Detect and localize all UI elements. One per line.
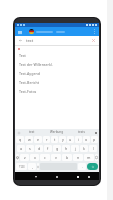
staticText: s (29, 146, 31, 151)
staticText: j (75, 146, 76, 151)
staticText: Text-Fotos (19, 89, 37, 94)
staticText: Text (19, 53, 26, 58)
button[interactable]: x (30, 154, 39, 161)
button[interactable]: k (80, 145, 88, 152)
button[interactable]: Search (87, 163, 98, 170)
other: Back (18, 38, 23, 43)
button[interactable]: v (51, 154, 61, 161)
button[interactable]: r (43, 136, 50, 143)
staticText: t (54, 137, 56, 142)
staticText: q (19, 137, 22, 142)
staticText: p (93, 137, 96, 142)
button[interactable]: c (40, 154, 50, 161)
staticText: u (69, 137, 72, 142)
button[interactable]: n (73, 154, 83, 161)
button[interactable]: More suggestions (94, 131, 97, 134)
staticText: Text-Aygend (19, 71, 40, 76)
button[interactable]: z (20, 154, 29, 161)
staticText: . (82, 164, 83, 169)
button[interactable]: e (34, 136, 42, 143)
button[interactable]: Text der Willenserkl. (15, 60, 99, 69)
button[interactable]: Text-Bericht (15, 78, 99, 87)
staticText: o (85, 137, 88, 142)
button[interactable]: s (26, 145, 34, 152)
staticText: y (62, 137, 64, 142)
staticText: , (32, 164, 33, 169)
button[interactable]: Text (15, 51, 99, 60)
staticText: x (34, 155, 36, 160)
staticText: text (26, 38, 34, 43)
button[interactable]: Clear (91, 38, 96, 43)
button[interactable]: d (35, 145, 43, 152)
staticText: l (93, 146, 94, 151)
staticText: g (56, 146, 59, 151)
button[interactable]: Keyboard (86, 174, 91, 179)
button[interactable]: Back (33, 174, 38, 179)
button[interactable]: Recents (75, 174, 80, 179)
button[interactable]: j (71, 145, 79, 152)
button[interactable]: f (44, 145, 52, 152)
staticText: e (37, 137, 40, 142)
button[interactable]: More options (92, 29, 97, 34)
button[interactable]: Backspace (95, 154, 98, 161)
staticText: d (38, 146, 41, 151)
staticText: a (20, 146, 23, 151)
button[interactable]: a (17, 145, 25, 152)
button[interactable]: Menu (17, 29, 23, 35)
staticText: n (77, 155, 80, 160)
button[interactable]: Text-Aygend (15, 69, 99, 78)
button[interactable]: g (53, 145, 61, 152)
button[interactable]: text (20, 129, 44, 135)
staticText: ?123 (19, 165, 25, 169)
staticText: texts (78, 130, 85, 134)
staticText: h (65, 146, 68, 151)
button[interactable]: Text-Fotos (15, 87, 99, 96)
staticText: v (55, 155, 57, 160)
button[interactable]: Shift (16, 154, 19, 161)
button[interactable]: , (28, 163, 36, 170)
button[interactable]: w (25, 136, 33, 143)
button[interactable]: Werbung (44, 129, 69, 135)
staticText: text (29, 130, 35, 134)
staticText: f (47, 146, 49, 151)
staticText: Werbung (50, 130, 64, 134)
staticText: c (44, 155, 46, 160)
button[interactable]: m (84, 154, 94, 161)
button[interactable]: texts (69, 129, 94, 135)
staticText: i (78, 137, 79, 142)
button[interactable]: b (62, 154, 72, 161)
button[interactable]: y (59, 136, 66, 143)
button[interactable]: German (29, 29, 34, 34)
button[interactable]: ?123 (16, 163, 27, 170)
staticText: Text der Willenserkl. (19, 62, 53, 67)
staticText: w (28, 137, 31, 142)
button[interactable]: q (16, 136, 24, 143)
button[interactable]: Emoji (37, 163, 39, 170)
staticText: k (83, 146, 85, 151)
staticText: m (87, 155, 91, 160)
button[interactable]: u (67, 136, 74, 143)
button[interactable]: h (62, 145, 70, 152)
staticText: z (24, 155, 26, 160)
staticText: Text-Bericht (19, 80, 40, 85)
button[interactable]: Voice input (17, 131, 20, 134)
button[interactable]: p (91, 136, 98, 143)
button[interactable]: Back (15, 36, 99, 45)
staticText: b (66, 155, 69, 160)
button[interactable]: . (78, 163, 86, 170)
button[interactable]: i (75, 136, 82, 143)
button[interactable]: o (83, 136, 90, 143)
button[interactable]: t (51, 136, 58, 143)
staticText: r (46, 137, 48, 142)
button[interactable]: Home (54, 174, 59, 179)
button[interactable]: l (89, 145, 97, 152)
